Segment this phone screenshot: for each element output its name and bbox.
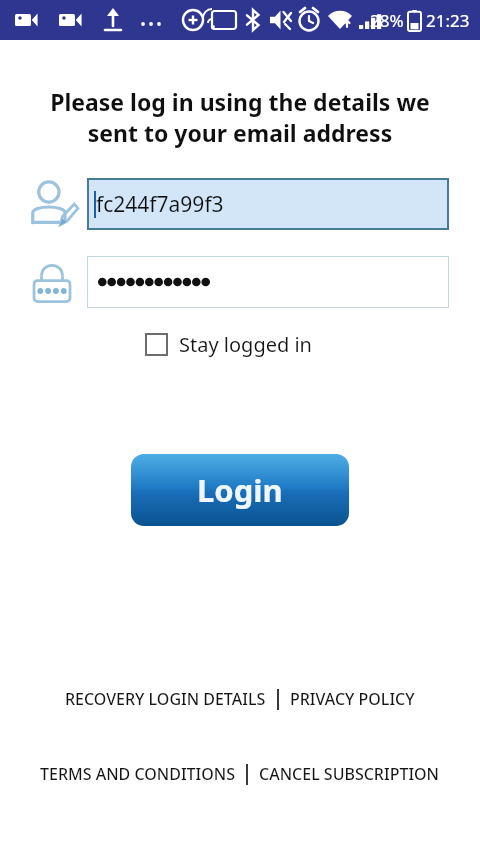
button[interactable] bbox=[87, 256, 449, 308]
button[interactable]: TERMS AND CONDITIONS bbox=[38, 758, 237, 790]
button[interactable]: fc244f7a99f3 bbox=[87, 178, 449, 230]
staticText: fc244f7a99f3 bbox=[96, 190, 224, 219]
staticText: Login bbox=[197, 469, 283, 511]
button[interactable]: CANCEL SUBSCRIPTION bbox=[257, 758, 442, 790]
other: Username bbox=[26, 178, 78, 230]
staticText: CANCEL SUBSCRIPTION bbox=[259, 763, 440, 785]
button[interactable]: Login bbox=[131, 454, 349, 526]
button[interactable]: Stay logged in bbox=[145, 327, 312, 362]
staticText: 28% bbox=[370, 9, 404, 32]
staticText: Please log in using the details we sent … bbox=[14, 86, 466, 149]
other: Password bbox=[27, 257, 77, 307]
staticText: Stay logged in bbox=[179, 331, 312, 358]
staticText: PRIVACY POLICY bbox=[290, 688, 415, 710]
button[interactable]: PRIVACY POLICY bbox=[288, 683, 417, 715]
staticText: RECOVERY LOGIN DETAILS bbox=[65, 688, 266, 710]
button[interactable]: RECOVERY LOGIN DETAILS bbox=[63, 683, 268, 715]
staticText: TERMS AND CONDITIONS bbox=[40, 763, 235, 785]
staticText: 21:23 bbox=[426, 9, 470, 32]
